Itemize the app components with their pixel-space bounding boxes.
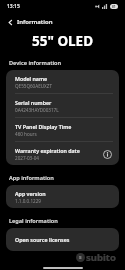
button[interactable]: Warranty expiration date <box>6 142 119 165</box>
button[interactable]: Model name <box>6 70 119 93</box>
staticText: 13:15 <box>7 3 20 10</box>
staticText: Warranty expiration date <box>15 147 80 154</box>
staticText: 1.1.0.0.1229 <box>15 198 41 204</box>
staticText: 81 <box>112 5 116 9</box>
button[interactable]: Open source licenses <box>6 228 119 251</box>
staticText: 2027-03-04 <box>15 155 39 161</box>
staticText: Device information <box>9 59 62 67</box>
button[interactable]: Back to Information <box>6 15 54 29</box>
staticText: App information <box>9 174 54 182</box>
staticText: Open source licenses <box>15 236 70 243</box>
staticText: 460 hours <box>15 131 37 137</box>
staticText: Legal information <box>9 217 58 225</box>
button[interactable]: Warranty information <box>101 148 113 160</box>
button[interactable]: App version <box>6 185 119 208</box>
button[interactable]: TV Panel Display Time <box>6 118 119 141</box>
staticText: subito <box>86 251 116 264</box>
staticText: Serial number <box>15 99 52 106</box>
staticText: Model name <box>15 75 48 82</box>
staticText: s <box>79 254 82 261</box>
staticText: QE55Q60AEUXZT <box>15 83 52 89</box>
button[interactable]: Serial number <box>6 94 119 117</box>
staticText: Information <box>17 18 53 26</box>
staticText: App version <box>15 190 46 197</box>
staticText: 0A4243HAYD00317L <box>15 107 59 113</box>
staticText: 55" OLED <box>0 32 125 50</box>
staticText: TV Panel Display Time <box>15 123 72 130</box>
